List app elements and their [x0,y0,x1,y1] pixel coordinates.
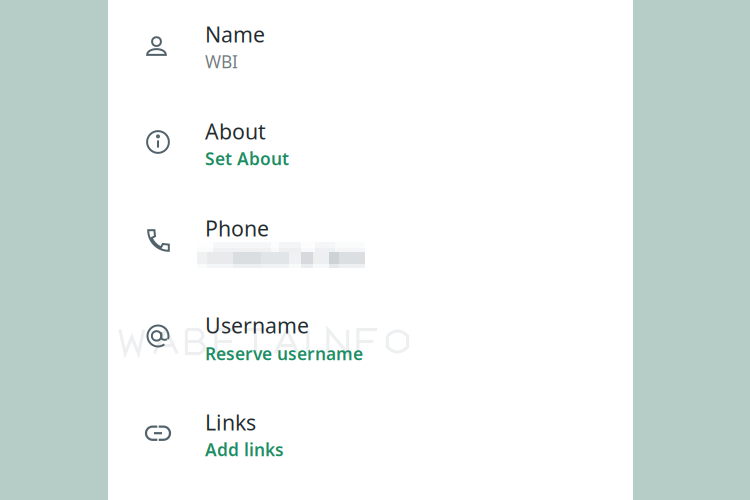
staticText: Phone [205,214,269,242]
staticText: Name [205,20,265,48]
button[interactable]: Name [108,0,633,97]
button[interactable]: Links [108,388,633,485]
staticText: Reserve username [205,342,363,365]
staticText: About [205,117,266,145]
staticText: Links [205,408,256,436]
button[interactable]: About [108,97,633,194]
staticText: WBI [205,50,238,73]
button[interactable]: Phone [108,194,633,291]
staticText: Set About [205,147,289,170]
staticText: Username [205,311,309,339]
button[interactable]: Username [108,291,633,388]
staticText: Add links [205,438,284,461]
